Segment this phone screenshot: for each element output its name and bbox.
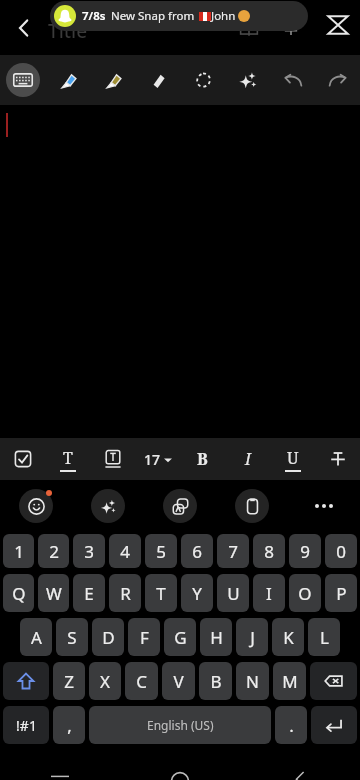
button[interactable]: X xyxy=(89,662,121,700)
button[interactable]: C xyxy=(125,662,158,700)
button[interactable]: Q xyxy=(3,574,34,612)
staticText: T xyxy=(63,447,73,469)
staticText: U xyxy=(227,582,240,605)
button[interactable]: R xyxy=(109,574,141,612)
button[interactable]: 17 xyxy=(135,438,180,480)
button[interactable]: Strikethrough xyxy=(315,438,360,480)
button[interactable]: Italic xyxy=(225,438,270,480)
staticText: 9 xyxy=(300,540,310,563)
staticText: U xyxy=(287,447,299,469)
button[interactable]: I xyxy=(253,574,285,612)
staticText: John xyxy=(211,8,236,24)
staticText: 7 xyxy=(228,540,238,563)
button[interactable]: 4 xyxy=(109,534,141,568)
staticText: O xyxy=(298,582,312,605)
button[interactable]: T xyxy=(145,574,177,612)
button[interactable]: Pen xyxy=(45,55,90,105)
button[interactable]: S xyxy=(56,618,88,656)
button[interactable]: N xyxy=(236,662,269,700)
button[interactable]: K xyxy=(272,618,304,656)
button[interactable]: Checklist xyxy=(0,438,45,480)
button[interactable]: 1 xyxy=(3,534,34,568)
button[interactable]: 5 xyxy=(145,534,177,568)
button[interactable]: Undo xyxy=(270,55,315,105)
button[interactable]: Redo xyxy=(315,55,360,105)
button[interactable]: Keyboard xyxy=(0,55,45,105)
button[interactable]: W xyxy=(38,574,69,612)
button[interactable]: Z xyxy=(53,662,85,700)
staticText: S xyxy=(67,626,77,649)
button[interactable]: D xyxy=(92,618,124,656)
button[interactable]: 8 xyxy=(253,534,285,568)
button[interactable]: Shift xyxy=(3,662,49,700)
button[interactable]: 7/8s xyxy=(50,1,308,31)
button[interactable]: P xyxy=(325,574,357,612)
button[interactable]: Eraser xyxy=(135,55,180,105)
button[interactable]: H xyxy=(200,618,232,656)
staticText: Q xyxy=(12,582,26,605)
button[interactable]: V xyxy=(162,662,195,700)
button[interactable]: U xyxy=(217,574,249,612)
staticText: . xyxy=(289,714,294,737)
staticText: W xyxy=(46,582,62,605)
staticText: I xyxy=(245,448,251,470)
button[interactable]: Lasso select xyxy=(180,55,225,105)
staticText: D xyxy=(102,626,115,649)
button[interactable]: !#1 xyxy=(3,706,49,744)
staticText: H xyxy=(210,626,223,649)
button[interactable]: A xyxy=(20,618,52,656)
button[interactable]: AI enhance xyxy=(225,55,270,105)
staticText: 17 xyxy=(144,450,161,469)
button[interactable]: Y xyxy=(181,574,213,612)
staticText: P xyxy=(336,582,347,605)
staticText: N xyxy=(246,670,259,693)
staticText: L xyxy=(320,626,329,649)
button[interactable]: M xyxy=(273,662,306,700)
button[interactable]: Emoji xyxy=(0,480,72,532)
staticText: X xyxy=(100,670,110,693)
button[interactable]: 3 xyxy=(73,534,105,568)
button[interactable]: , xyxy=(53,706,85,744)
staticText: V xyxy=(173,670,184,693)
button[interactable]: O xyxy=(289,574,321,612)
button[interactable]: 2 xyxy=(38,534,69,568)
button[interactable]: L xyxy=(308,618,340,656)
staticText: G xyxy=(174,626,187,649)
button[interactable]: Text box xyxy=(90,438,135,480)
button[interactable]: B xyxy=(199,662,232,700)
staticText: Title xyxy=(48,18,88,44)
button[interactable]: Recents xyxy=(0,750,120,780)
button[interactable]: Text style xyxy=(45,438,90,480)
staticText: !#1 xyxy=(16,716,37,735)
button[interactable]: Translate xyxy=(144,480,216,532)
button[interactable]: G xyxy=(164,618,196,656)
button[interactable]: Back xyxy=(0,4,48,52)
button[interactable]: English (US) xyxy=(89,706,271,744)
button[interactable]: F xyxy=(128,618,160,656)
button[interactable]: More options xyxy=(316,3,360,47)
button[interactable]: J xyxy=(236,618,268,656)
staticText: B xyxy=(210,670,222,693)
button[interactable]: AI assist xyxy=(72,480,144,532)
button[interactable]: E xyxy=(73,574,105,612)
button[interactable]: 9 xyxy=(289,534,321,568)
button[interactable]: Clipboard xyxy=(216,480,288,532)
button[interactable]: Bold xyxy=(180,438,225,480)
staticText: Z xyxy=(64,670,74,693)
button[interactable]: More xyxy=(288,480,360,532)
button[interactable]: Highlighter xyxy=(90,55,135,105)
button[interactable]: 7 xyxy=(217,534,249,568)
button[interactable]: 0 xyxy=(325,534,357,568)
button[interactable]: Backspace xyxy=(310,662,357,700)
staticText: 3 xyxy=(84,540,94,563)
button[interactable]: Back xyxy=(240,750,360,780)
button[interactable]: . xyxy=(275,706,307,744)
button[interactable]: 6 xyxy=(181,534,213,568)
button[interactable]: Underline xyxy=(270,438,315,480)
staticText: A xyxy=(31,626,42,649)
button[interactable]: Home xyxy=(120,750,240,780)
button[interactable]: Enter xyxy=(311,706,357,744)
staticText: E xyxy=(84,582,94,605)
staticText: 1 xyxy=(14,540,24,563)
staticText: M xyxy=(282,670,298,693)
